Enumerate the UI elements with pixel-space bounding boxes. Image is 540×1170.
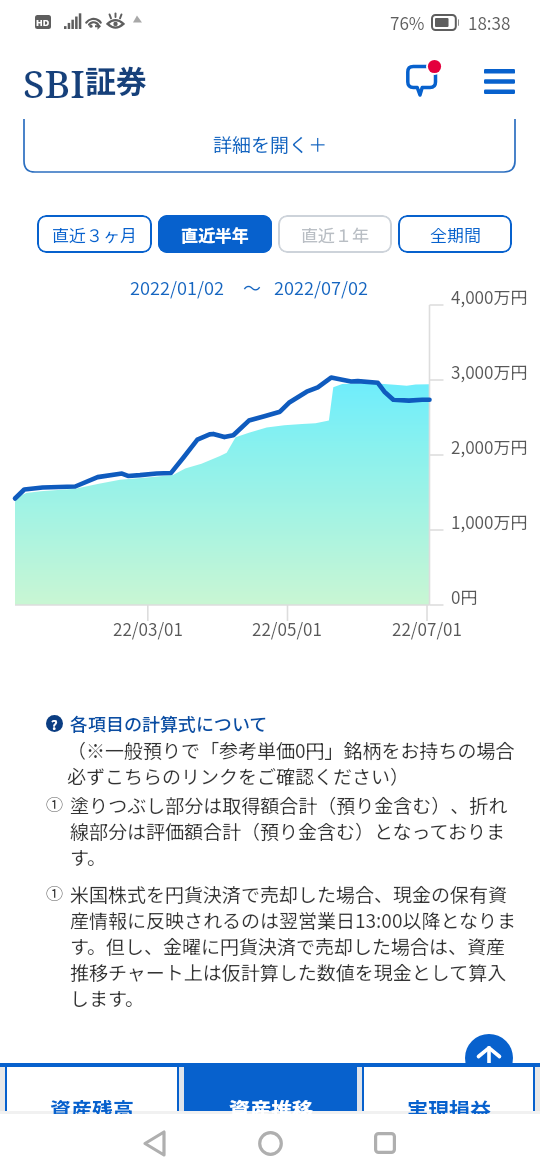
staticText: 4,000万円 — [451, 284, 528, 309]
staticText: 0円 — [451, 584, 478, 609]
button[interactable]: Scroll to top — [465, 1034, 513, 1082]
staticText: 76% — [390, 10, 425, 35]
staticText: （※一般預りで「参考単価0円」銘柄をお持ちの場合必ずこちらのリンクをご確認くださ… — [67, 736, 518, 789]
staticText: 直近３ヶ月 — [52, 222, 137, 247]
staticText: 米国株式を円貨決済で売却した場合、現金の保有資産情報に反映されるのは翌営業日13… — [70, 880, 518, 1011]
button[interactable]: Menu — [476, 58, 523, 105]
staticText: 22/07/01 — [392, 616, 462, 641]
staticText: 22/03/01 — [113, 616, 183, 641]
staticText: HD — [36, 16, 50, 29]
button[interactable]: Messages — [402, 56, 448, 102]
button[interactable]: 直近３ヶ月 — [37, 215, 152, 253]
staticText: 実現損益 — [407, 1094, 491, 1114]
staticText: 資産推移 — [229, 1094, 313, 1114]
button[interactable]: 直近１年 — [278, 215, 392, 253]
staticText: 2,000万円 — [451, 434, 528, 459]
button[interactable]: 直近半年 — [158, 215, 272, 253]
button[interactable]: Back — [131, 1120, 177, 1166]
staticText: 22/05/01 — [252, 616, 322, 641]
button[interactable]: ? — [46, 710, 268, 736]
staticText: 資産残高 — [50, 1094, 134, 1114]
staticText: 18:38 — [468, 10, 511, 35]
staticText: 詳細を開く＋ — [213, 130, 328, 158]
staticText: ① — [46, 791, 70, 816]
staticText: 2022/07/02 — [274, 274, 369, 300]
staticText: 直近半年 — [181, 222, 249, 247]
staticText: 各項目の計算式について — [70, 710, 268, 736]
staticText: 直近１年 — [301, 222, 369, 247]
button[interactable]: SBI — [23, 56, 147, 109]
button[interactable]: 全期間 — [398, 215, 512, 253]
button[interactable]: 資産残高 — [5, 1067, 179, 1111]
staticText: 2022/01/02 — [130, 274, 225, 300]
staticText: ① — [46, 880, 70, 905]
staticText: 〜 — [243, 274, 261, 300]
staticText: SBI — [23, 56, 85, 109]
staticText: 3,000万円 — [451, 359, 528, 384]
button[interactable]: 実現損益 — [362, 1067, 535, 1111]
button[interactable]: Home — [247, 1120, 293, 1166]
button[interactable]: 資産推移 — [184, 1067, 357, 1111]
button[interactable]: Recents — [362, 1120, 408, 1166]
staticText: ? — [51, 715, 58, 732]
staticText: 全期間 — [430, 222, 481, 247]
staticText: 塗りつぶし部分は取得額合計（預り金含む）、折れ線部分は評価額合計（預り金含む）と… — [70, 791, 518, 870]
staticText: 証券 — [85, 57, 147, 102]
staticText: 1,000万円 — [451, 509, 528, 534]
button[interactable]: 詳細を開く＋ — [0, 119, 540, 173]
